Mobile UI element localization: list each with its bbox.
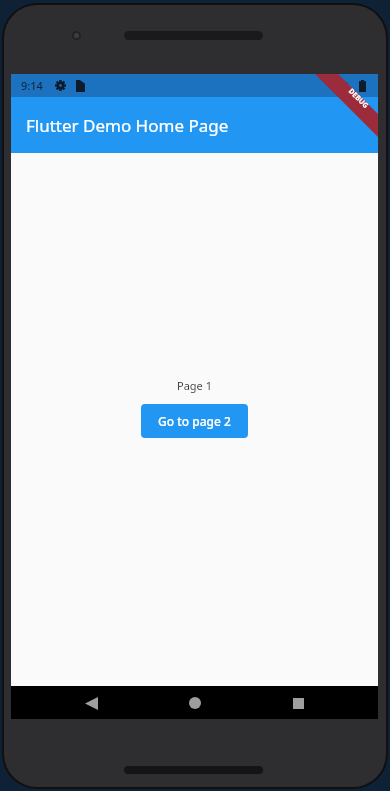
staticText: DEBUG: [346, 87, 371, 111]
staticText: Page 1: [177, 378, 212, 393]
staticText: Go to page 2: [158, 413, 231, 429]
other: Wi-Fi: [334, 80, 348, 91]
other: Battery: [359, 80, 366, 92]
button[interactable]: Go to page 2: [141, 404, 248, 438]
staticText: 9:14: [21, 78, 43, 93]
button[interactable]: Recent apps: [282, 687, 314, 719]
other: Settings: [55, 80, 66, 91]
other: SD card: [76, 80, 85, 92]
button[interactable]: Back: [75, 687, 107, 719]
button[interactable]: Home: [179, 687, 211, 719]
staticText: Flutter Demo Home Page: [26, 114, 229, 137]
